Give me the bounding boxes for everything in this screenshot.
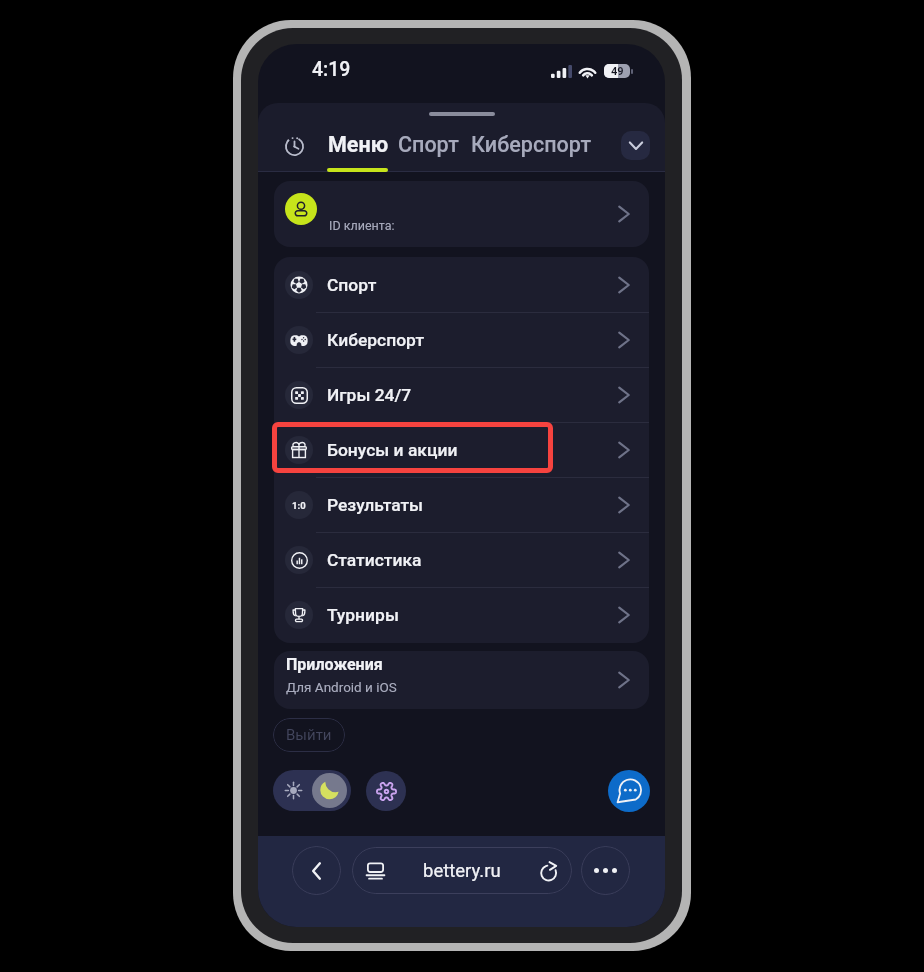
- button[interactable]: Спорт: [274, 257, 649, 312]
- button[interactable]: Expand menu: [621, 131, 650, 160]
- staticText: Меню: [328, 132, 389, 157]
- button[interactable]: Выйти: [273, 718, 345, 752]
- staticText: Киберспорт: [327, 330, 425, 350]
- button[interactable]: Киберспорт: [471, 132, 592, 157]
- staticText: Турниры: [327, 605, 399, 625]
- button[interactable]: Бонусы и акции: [274, 422, 649, 477]
- button[interactable]: Back: [292, 846, 341, 895]
- staticText: Выйти: [286, 726, 332, 744]
- staticText: Для Android и iOS: [286, 679, 397, 695]
- staticText: 4:19: [312, 58, 351, 81]
- staticText: Бонусы и акции: [327, 440, 458, 460]
- button[interactable]: Статистика: [274, 532, 649, 587]
- button[interactable]: bettery.ru: [352, 847, 572, 894]
- button[interactable]: Спорт: [398, 132, 459, 157]
- button[interactable]: History: [279, 131, 309, 161]
- staticText: Игры 24/7: [327, 385, 412, 405]
- staticText: Киберспорт: [471, 132, 592, 157]
- staticText: Спорт: [327, 275, 377, 295]
- button[interactable]: More options: [581, 846, 630, 895]
- button[interactable]: ID клиента:: [274, 181, 649, 247]
- staticText: 49: [611, 65, 624, 78]
- button[interactable]: Меню: [328, 132, 389, 157]
- button[interactable]: Игры 24/7: [274, 367, 649, 422]
- button[interactable]: Settings: [366, 771, 406, 811]
- button[interactable]: Chat support: [608, 770, 650, 812]
- staticText: Приложения: [286, 655, 383, 674]
- staticText: Результаты: [327, 495, 424, 515]
- staticText: 1:0: [292, 500, 306, 511]
- button[interactable]: Dark theme: [312, 773, 347, 808]
- button[interactable]: Киберспорт: [274, 312, 649, 367]
- staticText: Спорт: [398, 132, 459, 157]
- staticText: Статистика: [327, 550, 422, 570]
- staticText: ID клиента:: [329, 218, 395, 233]
- button[interactable]: Light theme: [274, 770, 312, 811]
- button[interactable]: Приложения: [274, 651, 649, 709]
- button[interactable]: 1:0: [274, 477, 649, 532]
- button[interactable]: Турниры: [274, 587, 649, 642]
- staticText: bettery.ru: [423, 860, 501, 882]
